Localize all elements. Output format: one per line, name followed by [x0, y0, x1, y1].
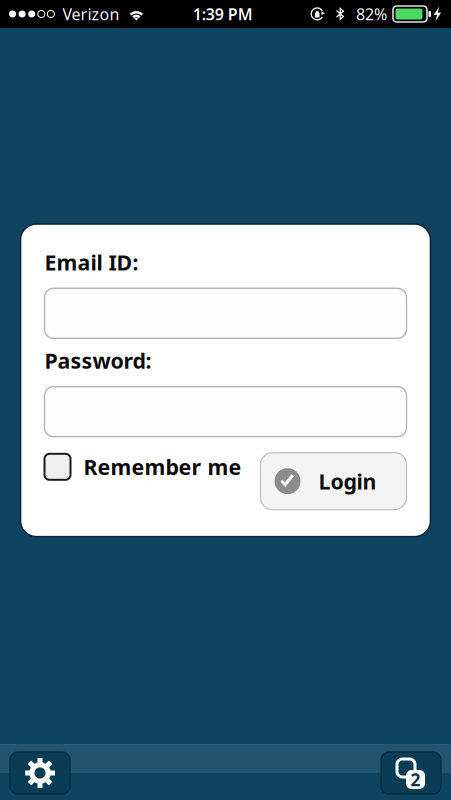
staticText: Email ID: [44, 248, 138, 276]
staticText: Password: [44, 346, 151, 375]
button[interactable]: Login [260, 453, 406, 510]
button[interactable]: Settings [10, 752, 70, 794]
button[interactable]: Remember me [44, 453, 241, 481]
staticText: 82% [356, 3, 387, 25]
staticText: Login [318, 467, 376, 495]
staticText: 2 [410, 768, 420, 791]
staticText: Verizon [62, 3, 119, 25]
staticText: 1:39 PM [193, 3, 253, 25]
button[interactable]: Tabs [381, 752, 441, 794]
staticText: Remember me [83, 453, 241, 481]
